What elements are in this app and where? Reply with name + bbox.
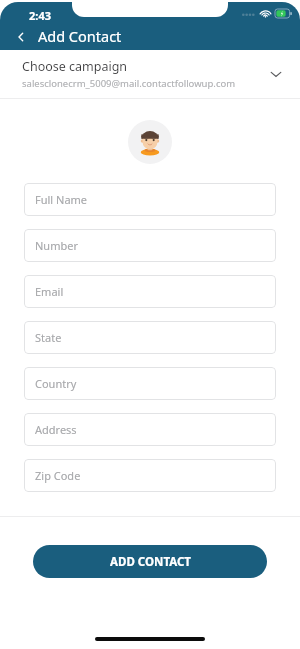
- staticText: Email: [35, 284, 64, 299]
- button[interactable]: Zip Code: [24, 459, 276, 492]
- button[interactable]: Full Name: [24, 183, 276, 216]
- button[interactable]: Expand campaign list: [264, 62, 288, 86]
- staticText: State: [35, 330, 62, 345]
- staticText: Zip Code: [35, 468, 81, 483]
- button[interactable]: State: [24, 321, 276, 354]
- staticText: Full Name: [35, 192, 88, 207]
- staticText: Country: [35, 376, 77, 391]
- staticText: Number: [35, 238, 78, 253]
- button[interactable]: Number: [24, 229, 276, 262]
- button[interactable]: Country: [24, 367, 276, 400]
- button[interactable]: Back: [8, 24, 34, 50]
- staticText: Add Contact: [38, 26, 122, 46]
- button[interactable]: Address: [24, 413, 276, 446]
- button[interactable]: Choose campaign: [0, 50, 300, 98]
- button[interactable]: Contact photo: [128, 120, 172, 164]
- staticText: Choose campaign: [22, 58, 128, 75]
- staticText: Address: [35, 422, 77, 437]
- button[interactable]: Email: [24, 275, 276, 308]
- staticText: 2:43: [29, 8, 51, 23]
- staticText: salesclonecrm_5009@mail.contactfollowup.…: [22, 77, 236, 90]
- staticText: ADD CONTACT: [110, 554, 191, 570]
- button[interactable]: ADD CONTACT: [33, 545, 267, 578]
